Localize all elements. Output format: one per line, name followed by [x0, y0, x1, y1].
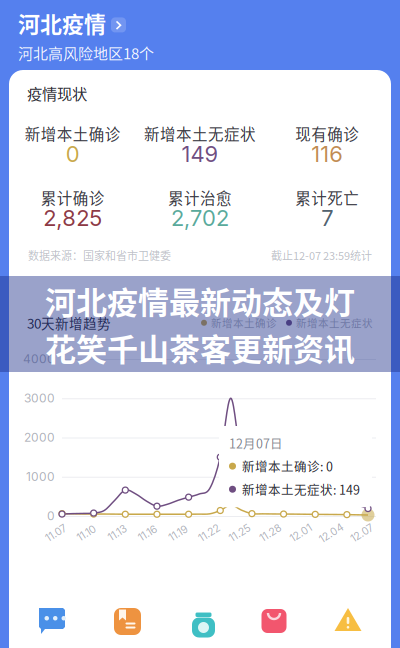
staticText: 河北疫情最新动态及灯 [45, 278, 355, 323]
button[interactable]: Alerts [311, 605, 385, 635]
staticText: 0 [47, 509, 55, 523]
button[interactable]: Notes [89, 605, 163, 635]
staticText: 新增本土确诊: 0 [242, 457, 333, 475]
staticText: 河北高风险地区18个 [18, 42, 154, 64]
button[interactable]: 河北疫情 [0, 0, 240, 64]
staticText: 11.25 [228, 527, 251, 539]
staticText: 新增本土确诊 [211, 315, 277, 330]
staticText: 12.04 [318, 527, 345, 539]
staticText: 7 [321, 205, 333, 231]
staticText: 11.10 [76, 527, 97, 539]
staticText: 截止12-07 23:59统计 [271, 247, 372, 263]
staticText: 现有确诊 [295, 122, 359, 145]
staticText: 1000 [26, 469, 55, 484]
button[interactable]: Supplies [163, 605, 237, 635]
staticText: 2,825 [43, 205, 102, 231]
staticText: 疫情现状 [27, 82, 87, 104]
staticText: 新增本土确诊 [25, 122, 121, 145]
staticText: 累计治愈 [168, 186, 232, 209]
button[interactable]: Messages [15, 605, 89, 635]
staticText: 花笑千山茶客更新资讯 [45, 325, 355, 370]
button[interactable]: Shop [237, 605, 311, 635]
staticText: 累计死亡 [295, 186, 359, 209]
staticText: 12.01 [289, 527, 313, 539]
staticText: 0 [66, 141, 80, 167]
staticText: 11.13 [107, 527, 127, 539]
staticText: 2000 [24, 430, 55, 445]
staticText: 11.16 [137, 527, 158, 539]
staticText: 累计确诊 [41, 186, 105, 209]
staticText: 12.07 [349, 527, 374, 539]
staticText: 河北疫情 [18, 7, 106, 39]
staticText: 11.28 [259, 527, 282, 539]
staticText: 新增本土无症状 [144, 122, 256, 145]
staticText: 新增本土无症状: 149 [242, 480, 360, 498]
staticText: 3000 [24, 391, 55, 405]
staticText: 4000 [23, 352, 55, 366]
staticText: 新增本土无症状 [296, 315, 373, 330]
staticText: 11.07 [44, 527, 67, 539]
staticText: 149 [181, 141, 218, 167]
staticText: 11.22 [197, 527, 220, 539]
staticText: 30天新增趋势 [27, 313, 111, 332]
staticText: 2,702 [171, 205, 229, 231]
staticText: 12月07日 [229, 434, 283, 452]
staticText: 11.19 [168, 527, 189, 539]
staticText: 数据来源：国家和省市卫健委 [28, 247, 171, 263]
staticText: 116 [311, 141, 343, 167]
